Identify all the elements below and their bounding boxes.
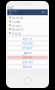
staticText: About: [23, 65, 32, 69]
staticText: Settings: [9, 9, 18, 16]
staticText: Privacy: [12, 20, 20, 24]
button[interactable]: Settings: [9, 11, 18, 14]
button[interactable]: Sign In: [7, 37, 48, 40]
button[interactable]: Delete: [7, 56, 48, 59]
button[interactable]: General: [7, 15, 48, 19]
button[interactable]: Export: [7, 51, 48, 54]
button[interactable]: Storage: [7, 23, 48, 27]
staticText: Delete: [22, 56, 32, 59]
button[interactable]: Display: [7, 31, 48, 35]
staticText: General: [12, 16, 23, 20]
button[interactable]: Privacy: [7, 19, 48, 23]
button[interactable]: Edit: [41, 11, 46, 14]
staticText: Edit: [41, 11, 46, 14]
button[interactable]: Network: [7, 27, 48, 31]
button[interactable]: Register: [7, 42, 48, 45]
staticText: Register: [21, 42, 33, 45]
staticText: 9:41: [7, 6, 14, 10]
staticText: Display: [12, 32, 21, 35]
staticText: Restore: [22, 46, 33, 50]
staticText: Network: [12, 28, 23, 31]
staticText: Log Out: [22, 60, 33, 64]
staticText: Sign In: [22, 37, 32, 40]
staticText: Storage: [12, 24, 22, 28]
staticText: Export: [23, 51, 31, 55]
button[interactable]: About: [7, 65, 48, 68]
button[interactable]: Restore: [7, 47, 48, 50]
button[interactable]: Log Out: [7, 61, 48, 64]
